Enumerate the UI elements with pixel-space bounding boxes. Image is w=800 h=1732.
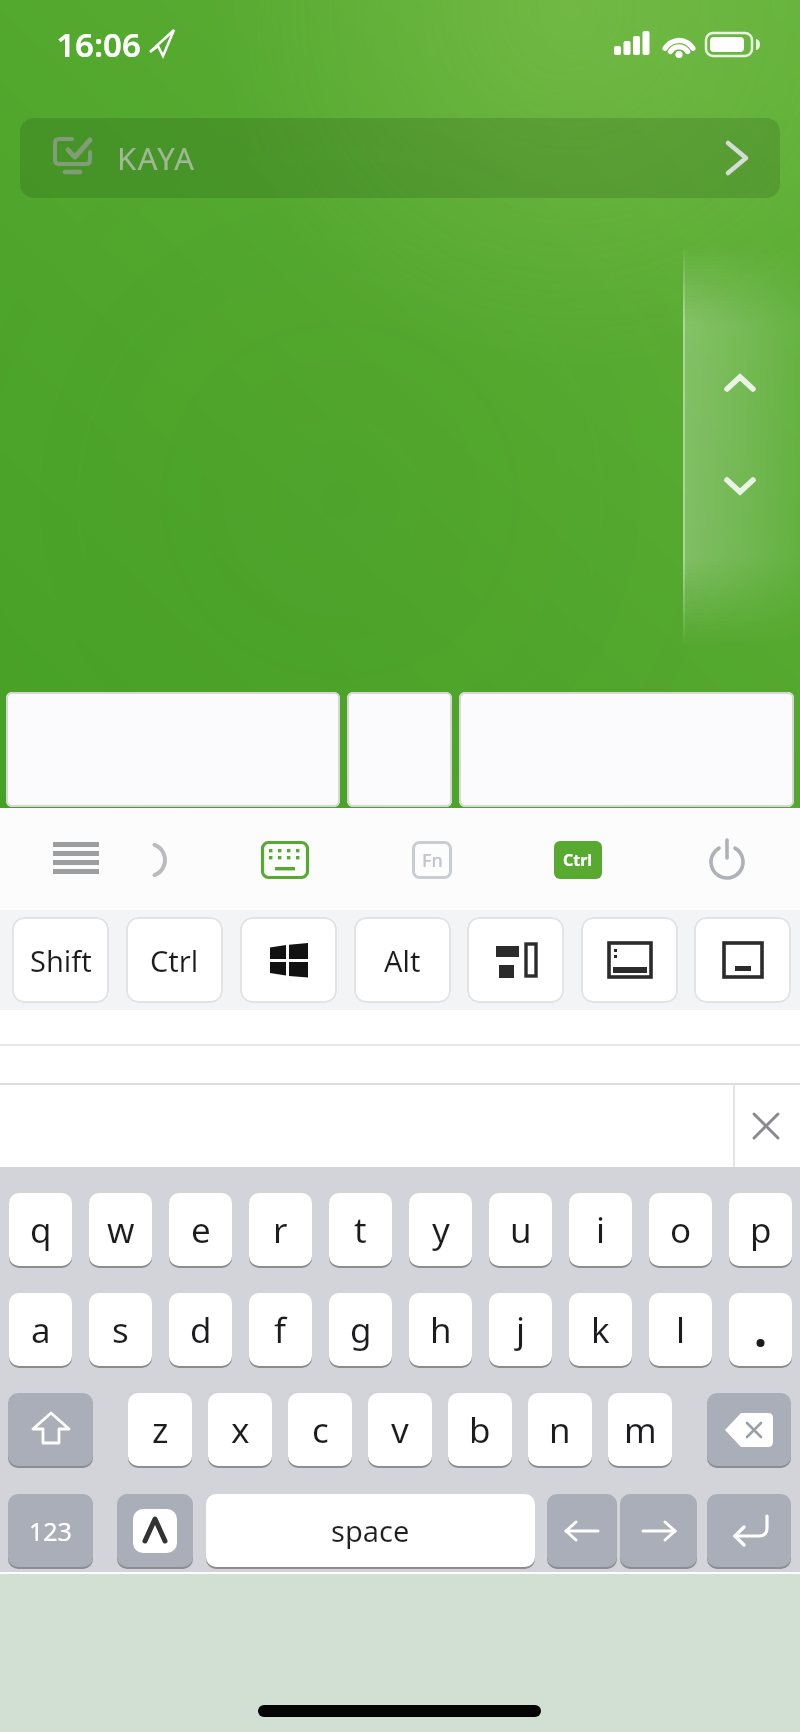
button[interactable] xyxy=(707,1393,791,1466)
button[interactable] xyxy=(240,917,337,1003)
staticText: s xyxy=(112,1306,129,1354)
button[interactable]: Ctrl xyxy=(554,841,602,879)
staticText: Ctrl xyxy=(150,941,199,980)
button[interactable] xyxy=(8,1393,93,1466)
staticText: z xyxy=(152,1406,169,1454)
button[interactable]: u xyxy=(489,1193,552,1266)
button[interactable] xyxy=(6,692,340,807)
staticText: t xyxy=(354,1206,367,1254)
button[interactable] xyxy=(707,1494,791,1567)
staticText: a xyxy=(31,1306,51,1354)
staticText: c xyxy=(312,1406,329,1454)
staticText: p xyxy=(750,1206,772,1254)
button[interactable]: a xyxy=(9,1293,72,1366)
button[interactable]: y xyxy=(409,1193,472,1266)
staticText: Shift xyxy=(30,941,92,980)
staticText: b xyxy=(469,1406,491,1454)
button[interactable]: t xyxy=(329,1193,392,1266)
staticText: u xyxy=(510,1206,532,1254)
button[interactable] xyxy=(20,118,780,198)
staticText: v xyxy=(391,1406,409,1454)
button[interactable]: w xyxy=(89,1193,152,1266)
staticText: i xyxy=(596,1206,606,1254)
button[interactable]: Alt xyxy=(354,917,451,1003)
button[interactable] xyxy=(705,838,749,882)
staticText: Alt xyxy=(384,941,421,980)
button[interactable]: g xyxy=(329,1293,392,1366)
staticText: y xyxy=(432,1206,450,1254)
button[interactable] xyxy=(261,839,309,881)
button[interactable] xyxy=(694,917,791,1003)
button[interactable]: f xyxy=(249,1293,312,1366)
button[interactable]: r xyxy=(249,1193,312,1266)
staticText: o xyxy=(670,1206,692,1254)
staticText: f xyxy=(274,1306,287,1354)
staticText: r xyxy=(273,1206,288,1254)
button[interactable]: 123 xyxy=(8,1494,93,1567)
button[interactable]: space xyxy=(206,1494,535,1567)
button[interactable] xyxy=(740,1100,792,1152)
button[interactable]: Fn xyxy=(412,841,452,879)
staticText: q xyxy=(30,1206,52,1254)
button[interactable]: s xyxy=(89,1293,152,1366)
button[interactable]: l xyxy=(649,1293,712,1366)
staticText: e xyxy=(191,1206,211,1254)
staticText: h xyxy=(430,1306,452,1354)
button[interactable] xyxy=(459,692,794,807)
staticText: space xyxy=(331,1511,410,1550)
staticText: m xyxy=(624,1406,657,1454)
staticText: g xyxy=(350,1306,372,1354)
button[interactable] xyxy=(547,1494,617,1567)
button[interactable]: d xyxy=(169,1293,232,1366)
button[interactable]: j xyxy=(489,1293,552,1366)
staticText: k xyxy=(591,1306,610,1354)
button[interactable]: Shift xyxy=(12,917,109,1003)
staticText: n xyxy=(549,1406,571,1454)
staticText: d xyxy=(190,1306,212,1354)
button[interactable] xyxy=(347,692,452,807)
button[interactable] xyxy=(50,838,102,882)
button[interactable] xyxy=(467,917,564,1003)
button[interactable]: b xyxy=(448,1393,512,1466)
button[interactable]: k xyxy=(569,1293,632,1366)
button[interactable]: e xyxy=(169,1193,232,1266)
button[interactable] xyxy=(581,917,678,1003)
button[interactable]: v xyxy=(368,1393,432,1466)
button[interactable] xyxy=(620,1494,697,1567)
staticText: j xyxy=(516,1306,526,1354)
button[interactable]: p xyxy=(729,1193,792,1266)
staticText: 123 xyxy=(29,1514,72,1548)
button[interactable]: n xyxy=(528,1393,592,1466)
staticText: KAYA xyxy=(117,137,196,179)
button[interactable] xyxy=(117,1494,193,1567)
button[interactable]: Ctrl xyxy=(126,917,223,1003)
staticText: 16:06 xyxy=(56,22,141,60)
button[interactable] xyxy=(729,1293,792,1366)
button[interactable]: i xyxy=(569,1193,632,1266)
staticText: Fn xyxy=(422,848,443,873)
button[interactable]: o xyxy=(649,1193,712,1266)
button[interactable]: h xyxy=(409,1293,472,1366)
button[interactable]: m xyxy=(608,1393,672,1466)
staticText: l xyxy=(676,1306,686,1354)
staticText: x xyxy=(231,1406,250,1454)
button[interactable]: q xyxy=(9,1193,72,1266)
staticText: w xyxy=(107,1206,135,1254)
staticText: Ctrl xyxy=(563,849,593,871)
button[interactable]: x xyxy=(208,1393,272,1466)
button[interactable]: c xyxy=(288,1393,352,1466)
button[interactable]: z xyxy=(128,1393,192,1466)
